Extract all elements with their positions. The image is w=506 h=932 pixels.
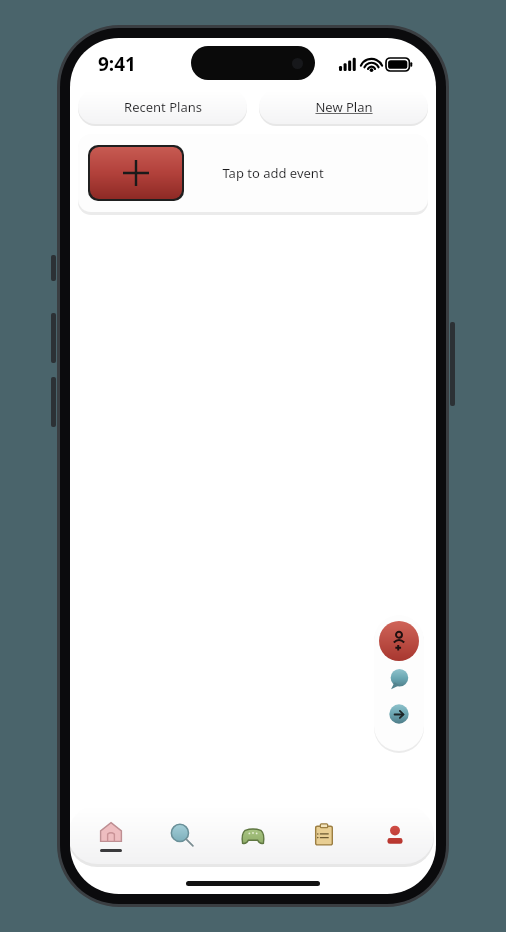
button[interactable]: Add event: [78, 134, 428, 212]
staticText: 9:41: [98, 51, 136, 77]
button[interactable]: Search: [146, 806, 217, 864]
button[interactable]: Home: [76, 806, 146, 864]
button[interactable]: Add friend: [379, 621, 419, 661]
staticText: Tap to add event: [222, 164, 324, 182]
button[interactable]: Tasks: [288, 806, 359, 864]
staticText: New Plan: [315, 98, 373, 116]
button[interactable]: New Plan: [259, 90, 428, 124]
button[interactable]: Send: [384, 699, 414, 729]
button[interactable]: Games: [217, 806, 288, 864]
button[interactable]: Messages: [384, 665, 414, 695]
button[interactable]: Recent Plans: [78, 90, 247, 124]
button[interactable]: Add event: [90, 147, 182, 199]
staticText: Recent Plans: [124, 98, 202, 116]
button[interactable]: Profile: [359, 806, 430, 864]
